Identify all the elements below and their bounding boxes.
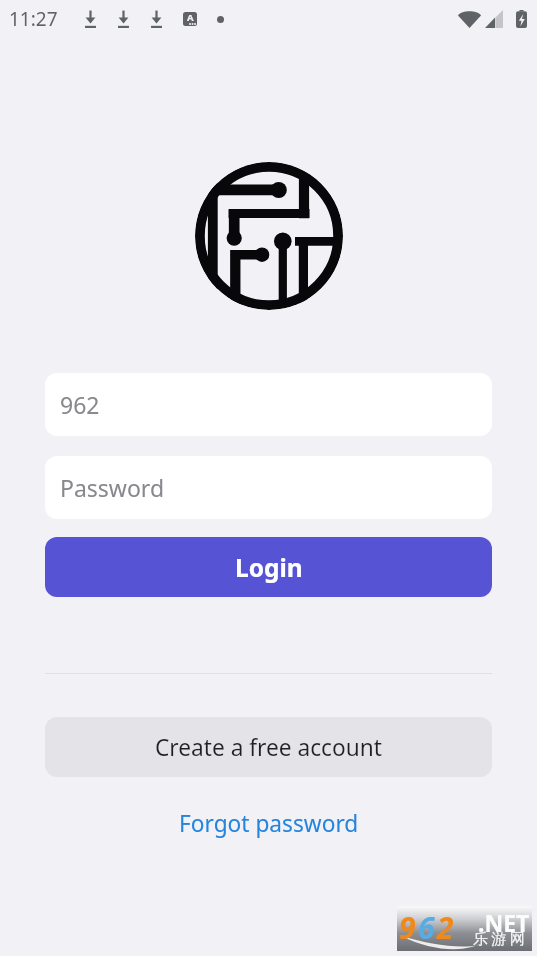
staticText: Password [60, 472, 165, 503]
other: Download [150, 10, 163, 28]
button[interactable]: Login [45, 537, 492, 597]
staticText: 9 [399, 907, 418, 948]
staticText: 6 [418, 907, 437, 948]
staticText: Forgot password [179, 808, 359, 839]
other: Download [117, 10, 130, 28]
staticText: 乐游网 [473, 930, 529, 949]
other: Battery charging [516, 10, 527, 28]
other: App logo [195, 162, 343, 310]
other: Wi-Fi [458, 10, 481, 28]
staticText: A [187, 12, 194, 24]
other: Download [84, 10, 97, 28]
button[interactable]: Forgot password [169, 804, 369, 843]
button[interactable]: 962 [45, 373, 492, 436]
other: Keyboard [183, 12, 197, 26]
button[interactable]: Create a free account [45, 717, 492, 777]
staticText: 11:27 [9, 6, 58, 32]
button[interactable]: Password [45, 456, 492, 519]
staticText: Login [235, 551, 303, 584]
staticText: Create a free account [155, 732, 382, 763]
other: Mobile signal [485, 10, 503, 28]
staticText: 2 [437, 907, 456, 948]
staticText: .NET [478, 907, 530, 938]
other: More notifications [217, 16, 224, 23]
staticText: 962 [60, 389, 100, 420]
